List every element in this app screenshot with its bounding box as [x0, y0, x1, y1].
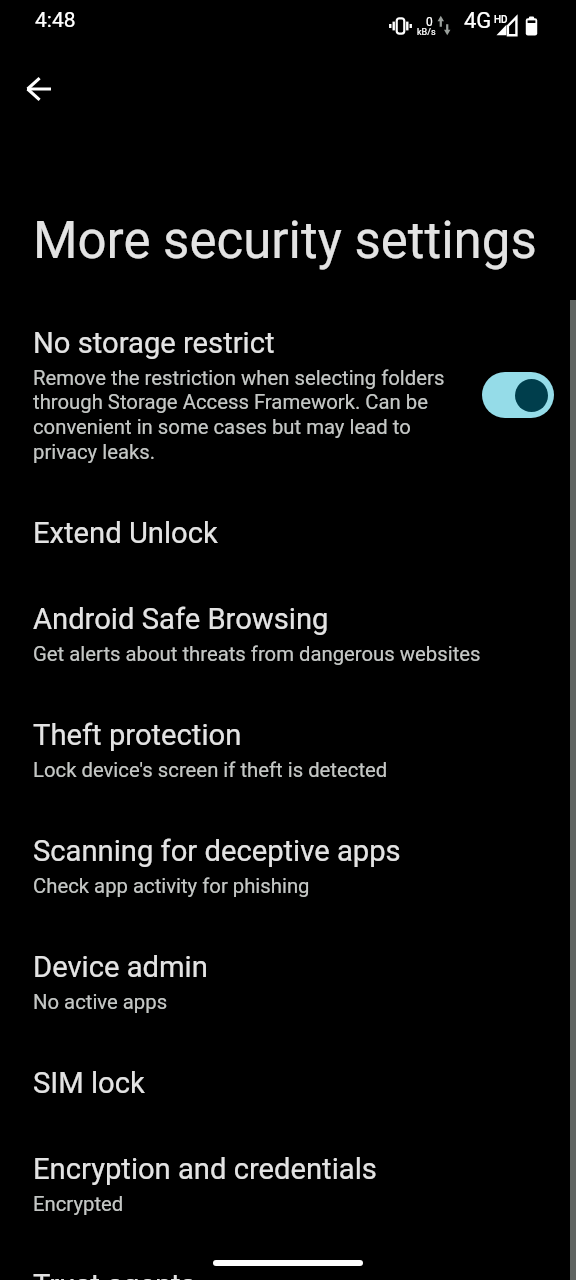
staticText: SIM lock	[33, 1066, 145, 1100]
staticText: Extend Unlock	[33, 516, 218, 550]
staticText: Trust agents	[33, 1268, 196, 1280]
staticText: 4G	[464, 8, 492, 34]
staticText: HD	[494, 14, 508, 26]
staticText: Check app activity for phishing	[33, 874, 310, 898]
staticText: Get alerts about threats from dangerous …	[33, 642, 481, 666]
button[interactable]: No storage restrict	[0, 326, 576, 490]
staticText: Device admin	[33, 950, 208, 984]
button[interactable]: SIM lock	[0, 1040, 576, 1126]
staticText: More security settings	[33, 211, 537, 271]
button[interactable]: Navigate up	[11, 61, 67, 117]
staticText: Scanning for deceptive apps	[33, 834, 401, 868]
button[interactable]: Extend Unlock	[0, 490, 576, 576]
button[interactable]: Device admin	[0, 924, 576, 1040]
staticText: Encryption and credentials	[33, 1152, 377, 1186]
staticText: 4:48	[35, 8, 76, 33]
button[interactable]: Theft protection	[0, 692, 576, 808]
staticText: kB/s	[417, 27, 436, 38]
staticText: Lock device's screen if theft is detecte…	[33, 758, 388, 782]
staticText: No active apps	[33, 990, 168, 1014]
staticText: Android Safe Browsing	[33, 602, 329, 636]
staticText: No storage restrict	[33, 326, 275, 360]
staticText: Remove the restriction when selecting fo…	[33, 366, 458, 464]
button[interactable]: Encryption and credentials	[0, 1126, 576, 1242]
staticText: 0	[426, 15, 433, 29]
button[interactable]: No storage restrict toggle	[482, 372, 554, 418]
staticText: Encrypted	[33, 1192, 124, 1216]
button[interactable]: Scanning for deceptive apps	[0, 808, 576, 924]
button[interactable]: Android Safe Browsing	[0, 576, 576, 692]
staticText: Theft protection	[33, 718, 242, 752]
button[interactable]: Trust agents	[0, 1242, 576, 1280]
